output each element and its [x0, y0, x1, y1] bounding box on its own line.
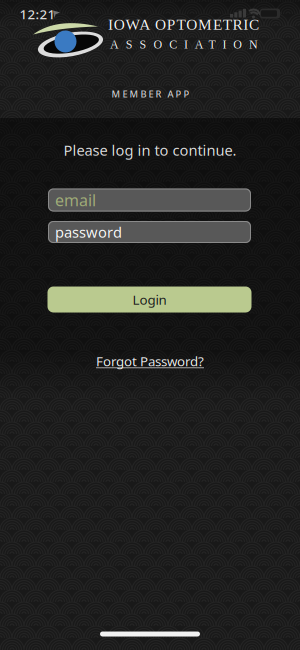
staticText: 12:21 [19, 5, 55, 23]
staticText: Please log in to continue. [63, 140, 236, 160]
staticText: email [55, 189, 96, 211]
staticText: M E M B E R A P P [111, 88, 189, 100]
staticText: Forgot Password? [96, 352, 204, 370]
button[interactable]: email [48, 188, 251, 211]
staticText: Login [132, 291, 166, 308]
button[interactable]: password [48, 221, 251, 243]
staticText: IOWA OPTOMETRIC [108, 16, 259, 33]
staticText: ASSOCIATION [110, 38, 258, 51]
staticText: password [55, 222, 122, 242]
button[interactable]: Forgot Password? [70, 353, 230, 369]
button[interactable]: Login [47, 286, 251, 312]
